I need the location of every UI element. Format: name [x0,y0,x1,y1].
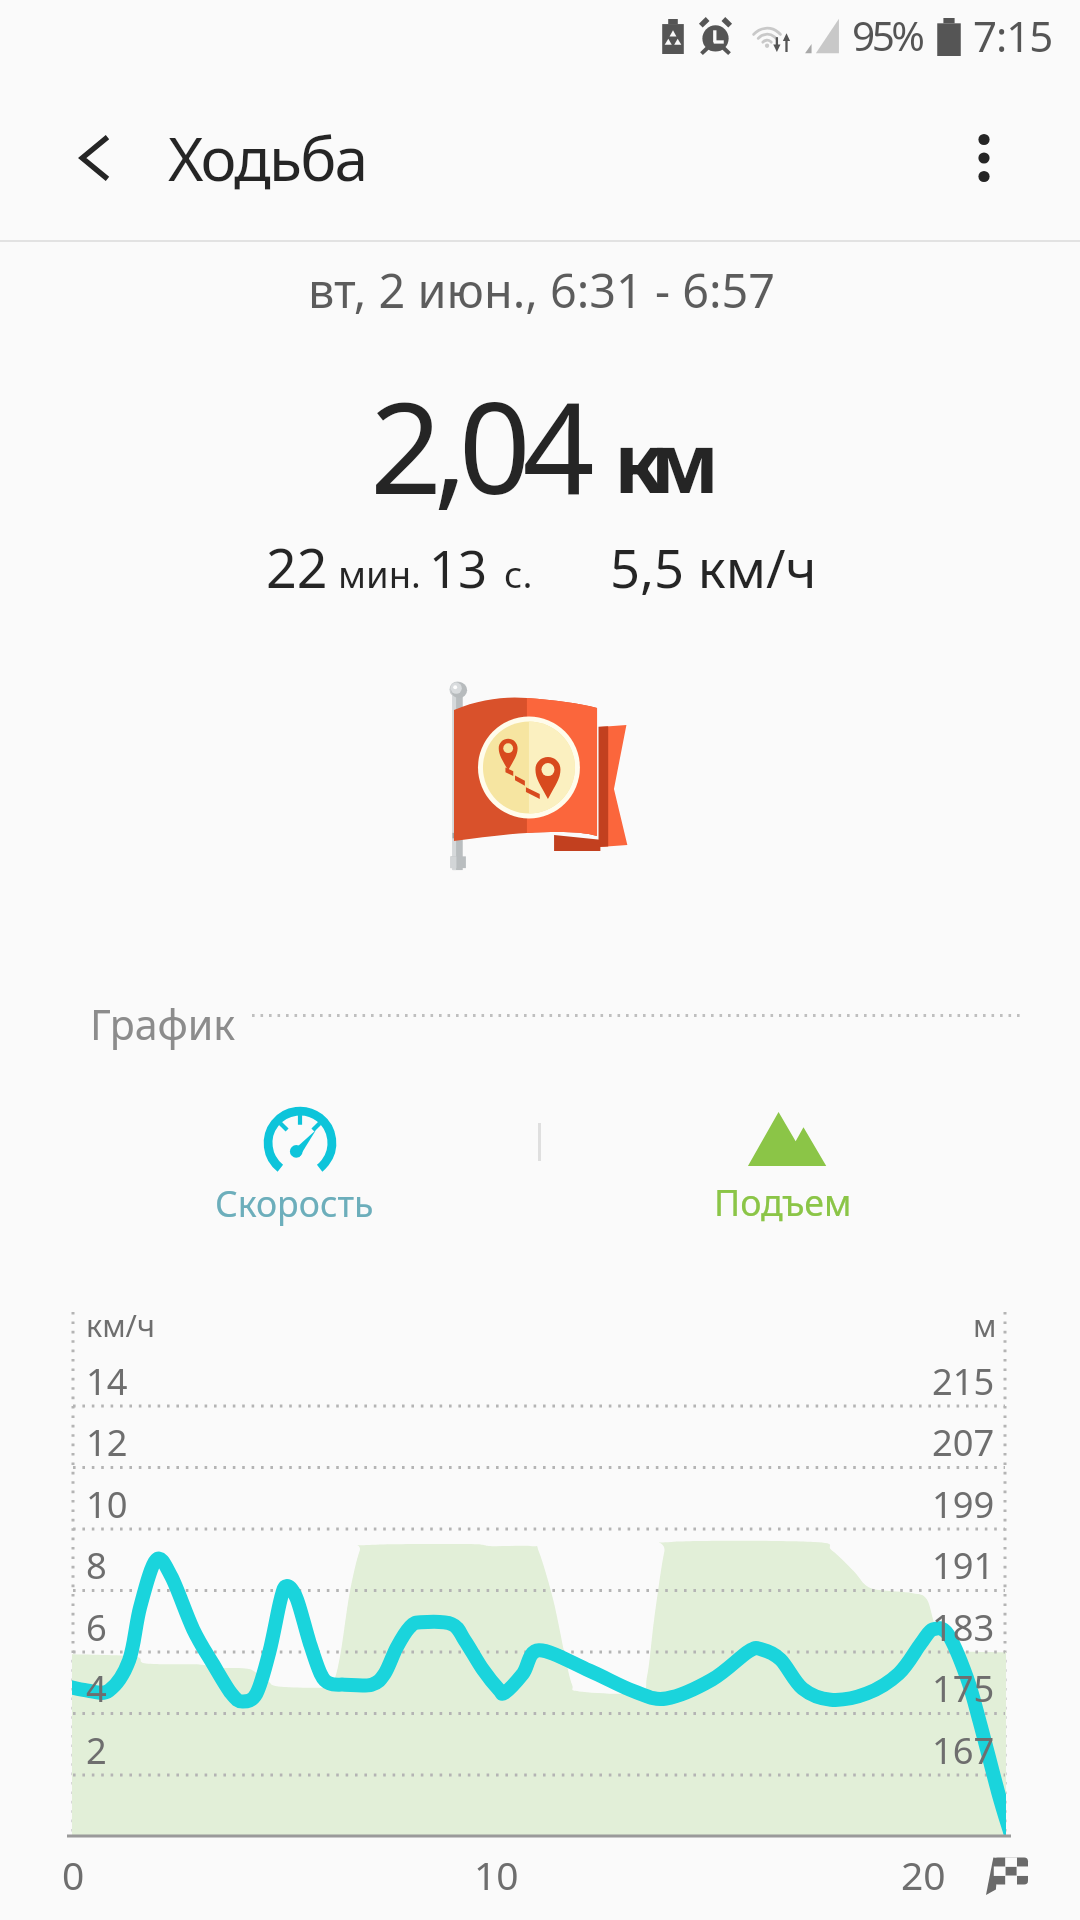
staticText: График [90,996,236,1052]
staticText: 199 [932,1479,995,1528]
staticText: 6 [86,1602,107,1651]
staticText: с. [504,548,533,599]
button[interactable]: More options [947,121,1021,195]
staticText: Ходьба [168,116,367,198]
staticText: 2 [86,1725,107,1774]
staticText: 0 [62,1848,85,1901]
button[interactable] [638,1098,928,1228]
staticText: 4 [86,1663,107,1712]
staticText: 13 [429,534,488,603]
staticText: 207 [932,1417,995,1466]
staticText: 8 [86,1540,107,1589]
staticText: 22 [266,530,328,603]
staticText: мин. [338,549,421,599]
staticText: 191 [932,1540,995,1589]
staticText: 2,04 [370,359,586,531]
staticText: 10 [474,1848,519,1901]
staticText: 215 [932,1356,995,1405]
staticText: м [973,1304,997,1346]
staticText: 20 [901,1848,946,1901]
staticText: 183 [932,1602,995,1651]
staticText: вт, 2 июн., 6:31 - 6:57 [308,258,775,322]
staticText: 175 [932,1663,995,1712]
staticText: 7:15 [973,7,1053,64]
staticText: 5,5 км/ч [610,532,817,604]
button[interactable] [152,1098,442,1228]
staticText: 95% [852,8,922,63]
staticText: км/ч [86,1304,155,1346]
staticText: 14 [86,1356,128,1405]
staticText: 167 [932,1725,995,1774]
staticText: км [614,405,706,517]
staticText: 12 [86,1417,128,1466]
staticText: Подъем [714,1178,852,1227]
staticText: 10 [86,1479,128,1528]
button[interactable]: Back [58,121,132,195]
staticText: Скорость [215,1179,374,1227]
